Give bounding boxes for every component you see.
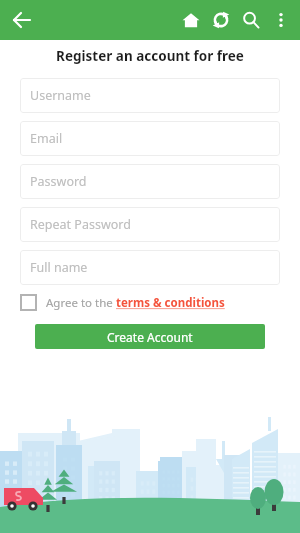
- button[interactable]: Create Account: [35, 324, 265, 349]
- button[interactable]: terms & conditions: [116, 295, 225, 311]
- button[interactable]: Refresh: [206, 5, 236, 35]
- staticText: Full name: [30, 259, 88, 276]
- button[interactable]: Password: [20, 164, 280, 199]
- button[interactable]: Repeat Password: [20, 207, 280, 242]
- button[interactable]: Agree to the: [20, 292, 280, 313]
- staticText: Username: [30, 87, 91, 104]
- button[interactable]: Username: [20, 78, 280, 113]
- staticText: Agree to the: [46, 295, 116, 311]
- button[interactable]: Home: [176, 5, 206, 35]
- staticText: Register an account for free: [0, 47, 300, 65]
- button[interactable]: Back: [6, 4, 38, 36]
- staticText: Email: [30, 130, 63, 147]
- button[interactable]: Full name: [20, 250, 280, 285]
- staticText: Password: [30, 173, 87, 190]
- button[interactable]: More options: [266, 5, 296, 35]
- staticText: Create Account: [107, 329, 193, 345]
- button[interactable]: Email: [20, 121, 280, 156]
- staticText: Repeat Password: [30, 216, 131, 233]
- button[interactable]: Search: [236, 5, 266, 35]
